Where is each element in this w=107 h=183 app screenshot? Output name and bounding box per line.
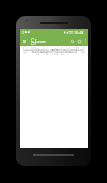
- staticText: မြန်မာနိုင်ငံအတွင်းမှာ အထောက်အပံ့ ပြုလုပ…: [21, 47, 87, 55]
- button[interactable]: Search: [69, 36, 76, 46]
- staticText: 10:48: [74, 30, 84, 35]
- button[interactable]: More options: [83, 36, 88, 46]
- button[interactable]: Bookmarks: [76, 36, 83, 46]
- button[interactable]: Open navigation drawer: [20, 36, 28, 46]
- staticText: မြန်မာစာ: [31, 38, 46, 45]
